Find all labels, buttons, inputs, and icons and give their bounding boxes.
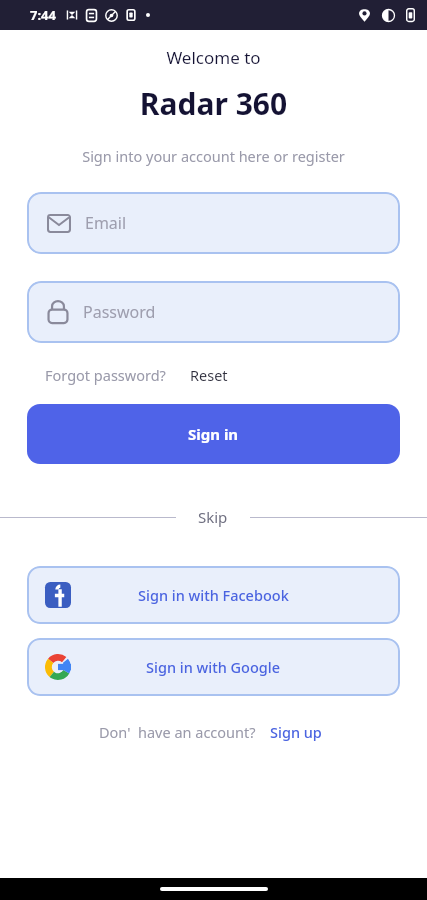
other: Email — [47, 214, 71, 233]
staticText: Email — [85, 212, 127, 234]
staticText: Don' have an account? — [99, 722, 256, 742]
staticText: Welcome to — [0, 46, 427, 69]
staticText: Sign in with Google — [146, 657, 281, 677]
button[interactable]: Skip — [176, 501, 250, 533]
staticText: Sign into your account here or register — [0, 146, 427, 166]
staticText: Sign in with Facebook — [138, 585, 289, 605]
staticText: Skip — [198, 507, 228, 527]
staticText: Sign in — [188, 424, 239, 444]
button[interactable]: Email — [27, 192, 400, 254]
staticText: Password — [83, 301, 156, 323]
staticText: 7:44 — [30, 6, 56, 24]
button[interactable]: Reset — [184, 361, 234, 389]
button[interactable]: Sign up — [256, 718, 328, 746]
button[interactable]: Sign in — [27, 404, 400, 464]
staticText: Sign up — [270, 722, 322, 742]
staticText: Radar 360 — [0, 83, 427, 124]
button[interactable]: Sign in with Facebook — [27, 566, 400, 624]
other: Password — [47, 300, 69, 324]
staticText: Forgot password? — [45, 365, 166, 385]
button[interactable]: Password — [27, 281, 400, 343]
button[interactable]: Sign in with Google — [27, 638, 400, 696]
staticText: Reset — [190, 365, 228, 385]
button[interactable]: Forgot password? — [27, 361, 184, 389]
